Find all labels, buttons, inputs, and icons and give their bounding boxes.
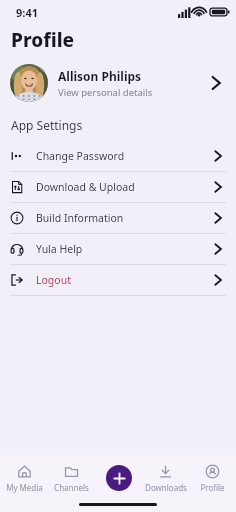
button[interactable]: Logout bbox=[0, 265, 236, 295]
staticText: Downloads bbox=[145, 482, 187, 493]
staticText: Logout bbox=[36, 273, 210, 287]
staticText: Yula Help bbox=[36, 242, 210, 256]
staticText: App Settings bbox=[11, 117, 83, 133]
button[interactable]: Download & Upload bbox=[0, 172, 236, 202]
staticText: Allison Philips bbox=[58, 68, 142, 84]
button[interactable]: Allison Philips bbox=[0, 61, 236, 105]
staticText: Build Information bbox=[36, 211, 210, 225]
staticText: My Media bbox=[6, 482, 43, 493]
staticText: Change Password bbox=[36, 149, 210, 163]
button[interactable]: Change Password bbox=[0, 141, 236, 171]
button[interactable]: Build Information bbox=[0, 203, 236, 233]
staticText: 9:41 bbox=[16, 5, 38, 20]
button[interactable]: My Media bbox=[0, 455, 48, 501]
button[interactable]: Channels bbox=[48, 455, 95, 501]
button[interactable]: Yula Help bbox=[0, 234, 236, 264]
staticText: Download & Upload bbox=[36, 180, 210, 194]
button[interactable]: Profile bbox=[189, 455, 236, 501]
staticText: Channels bbox=[54, 482, 89, 493]
staticText: View personal details bbox=[58, 86, 153, 99]
button[interactable]: Add bbox=[106, 465, 132, 491]
staticText: Profile bbox=[11, 27, 75, 53]
button[interactable]: Downloads bbox=[142, 455, 189, 501]
staticText: Profile bbox=[200, 482, 225, 493]
